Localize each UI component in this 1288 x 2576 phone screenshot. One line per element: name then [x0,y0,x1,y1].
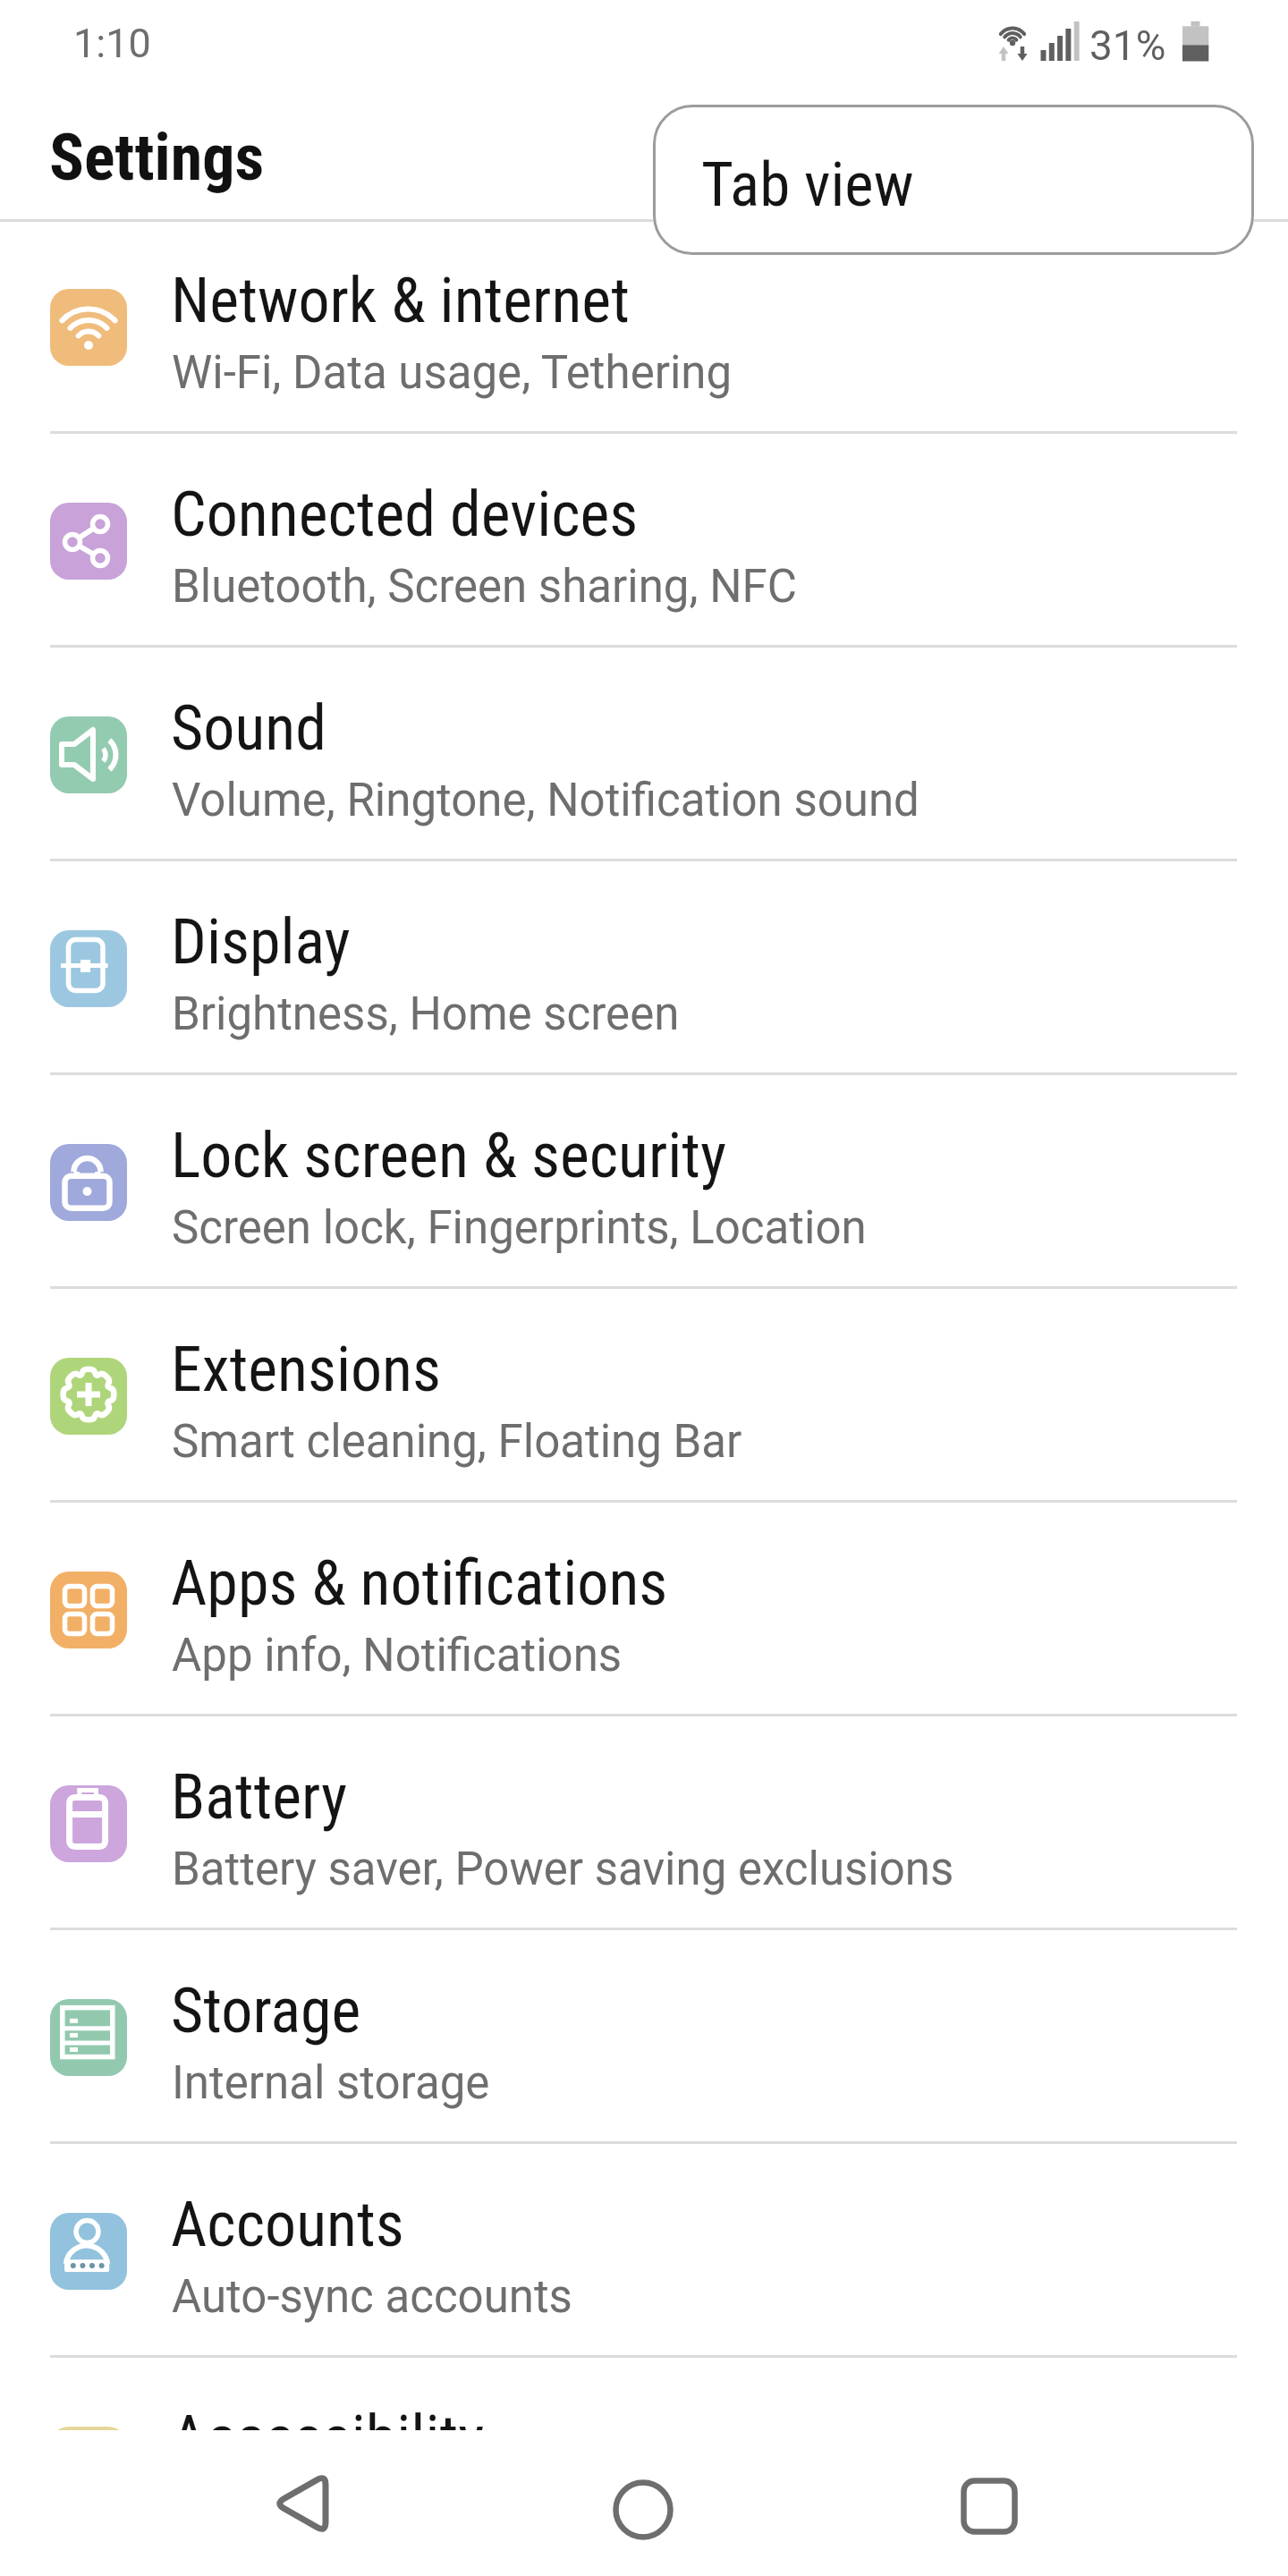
button[interactable]: Network & internet [0,220,1288,434]
button[interactable]: Display [0,861,1288,1075]
button[interactable]: Tab view [653,105,1254,255]
staticText: Tab view [701,148,914,221]
button[interactable]: Apps & notifications [0,1503,1288,1716]
staticText: Lock screen & security [171,1119,727,1192]
staticText: Internal storage [172,2056,490,2110]
button[interactable] [580,2430,706,2576]
button[interactable]: Connected devices [0,434,1288,648]
button[interactable]: Sound [0,648,1288,861]
button[interactable] [238,2430,363,2576]
staticText: Battery saver, Power saving exclusions [172,1843,954,1896]
staticText: Settings [49,120,265,195]
button[interactable]: Battery [0,1716,1288,1930]
staticText: Sound [171,691,326,765]
staticText: Vision, Hearing [172,2484,478,2538]
button[interactable]: Storage [0,1930,1288,2144]
staticText: Battery [171,1760,348,1834]
staticText: Screen lock, Fingerprints, Location [172,1201,867,1255]
staticText: Apps & notifications [171,1546,668,1620]
staticText: Accounts [171,2188,404,2261]
staticText: Extensions [171,1333,441,1406]
staticText: Auto-sync accounts [172,2270,572,2324]
button[interactable]: Lock screen & security [0,1075,1288,1289]
button[interactable]: Accessibility [0,2358,1288,2572]
staticText: Volume, Ringtone, Notification sound [172,774,919,827]
staticText: App info, Notifications [172,1629,623,1682]
staticText: Brightness, Home screen [172,987,680,1041]
staticText: Wi-Fi, Data usage, Tethering [172,346,733,400]
staticText: Smart cleaning, Floating Bar [172,1415,742,1469]
staticText: Network & internet [171,264,630,337]
staticText: Accessibility [171,2402,485,2475]
staticText: Connected devices [171,478,639,551]
staticText: 1:10 [73,20,151,67]
staticText: Display [171,905,351,979]
button[interactable]: Accounts [0,2144,1288,2358]
button[interactable] [927,2430,1052,2576]
button[interactable]: Extensions [0,1289,1288,1503]
staticText: Storage [171,1974,361,2047]
staticText: Bluetooth, Screen sharing, NFC [172,560,797,614]
staticText: 31% [1089,21,1166,70]
